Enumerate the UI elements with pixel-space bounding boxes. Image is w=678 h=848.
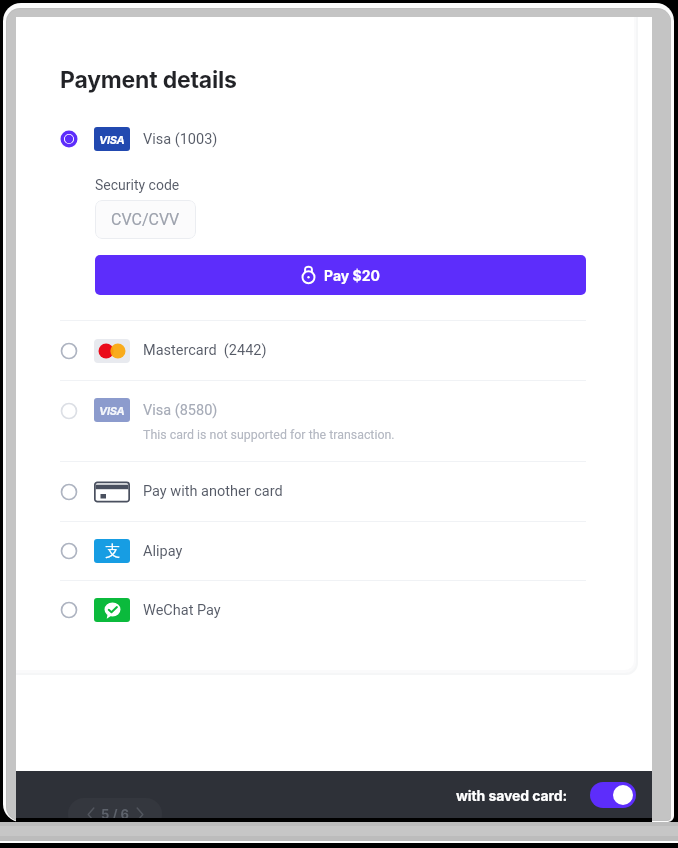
button[interactable]: Page 5 of 6 — [68, 798, 162, 830]
staticText: VISA — [99, 404, 125, 417]
staticText: VISA — [99, 133, 125, 146]
button[interactable]: CVC/CVV — [95, 200, 196, 239]
staticText: 支 — [105, 542, 120, 561]
staticText: This card is not supported for the trans… — [143, 427, 395, 442]
staticText: CVC/CVV — [111, 210, 180, 229]
button[interactable]: VISA — [60, 127, 586, 151]
button[interactable]: 支 — [60, 522, 586, 580]
button[interactable]: WeChat Pay — [60, 581, 586, 639]
staticText: Mastercard (2442) — [143, 342, 267, 359]
button[interactable]: Pay with another card — [60, 462, 586, 521]
staticText: with saved card: — [456, 787, 568, 804]
button[interactable]: Mastercard (2442) — [60, 321, 586, 380]
staticText: Security code — [95, 177, 180, 193]
staticText: Visa (8580) — [143, 402, 218, 419]
button[interactable]: VISA — [60, 381, 586, 461]
staticText: Pay with another card — [143, 483, 283, 500]
staticText: Payment details — [60, 66, 237, 94]
button[interactable]: Pay $20 — [95, 255, 586, 295]
button[interactable]: Toggle pay with saved card — [590, 782, 636, 808]
staticText: Visa (1003) — [143, 131, 218, 148]
staticText: 5 / 6 — [101, 806, 129, 822]
staticText: Alipay — [143, 543, 183, 560]
staticText: WeChat Pay — [143, 602, 221, 619]
staticText: Pay $20 — [324, 267, 380, 284]
